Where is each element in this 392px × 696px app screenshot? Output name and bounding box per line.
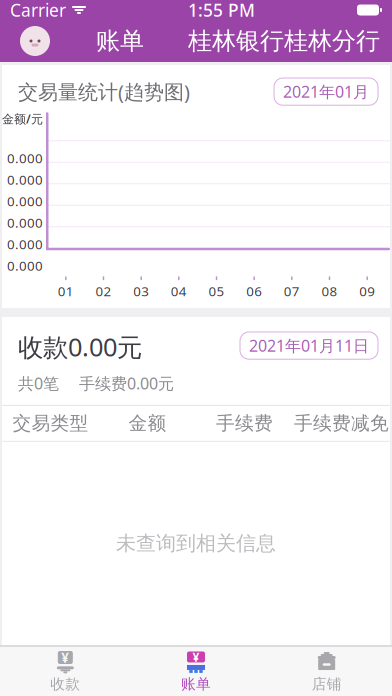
staticText: 04	[171, 282, 187, 300]
staticText: 收款0.00元	[18, 330, 142, 364]
staticText: 手续费减免	[294, 412, 389, 435]
staticText: 0.000	[7, 192, 43, 210]
button[interactable]: ¥	[131, 644, 261, 696]
staticText: 金额/元	[2, 111, 43, 127]
button[interactable]: 店铺	[261, 644, 392, 696]
button[interactable]: ¥	[0, 644, 131, 696]
staticText: Carrier	[10, 0, 66, 21]
staticText: 0.000	[7, 235, 43, 253]
staticText: 店铺	[312, 675, 342, 693]
staticText: 07	[284, 282, 300, 300]
staticText: ¥	[61, 649, 69, 666]
staticText: 2021年01月	[283, 81, 369, 102]
staticText: 06	[246, 282, 262, 300]
staticText: 05	[208, 282, 224, 300]
staticText: 0.000	[7, 171, 43, 188]
staticText: 0.000	[7, 214, 43, 231]
staticText: 01	[58, 282, 74, 300]
staticText: 手续费0.00元	[79, 373, 174, 394]
staticText: 共0笔	[18, 373, 59, 394]
button[interactable]: 2021年01月11日	[240, 332, 378, 359]
staticText: 08	[321, 282, 337, 300]
staticText: 0.000	[7, 149, 43, 167]
staticText: 桂林银行桂林分行	[188, 26, 380, 56]
staticText: 收款	[50, 675, 80, 693]
staticText: 0.000	[7, 257, 43, 274]
staticText: 交易类型	[12, 412, 88, 435]
staticText: 手续费	[216, 412, 273, 435]
staticText: 2021年01月11日	[249, 335, 369, 356]
staticText: ¥	[192, 649, 199, 665]
staticText: 1:55 PM	[188, 0, 255, 21]
staticText: 金额	[128, 412, 166, 435]
staticText: 账单	[181, 675, 211, 693]
staticText: 02	[95, 282, 111, 300]
staticText: 未查询到相关信息	[116, 531, 276, 556]
staticText: 账单	[96, 26, 144, 56]
staticText: 交易量统计(趋势图)	[18, 78, 190, 105]
staticText: 03	[133, 282, 149, 300]
button[interactable]: Profile	[18, 24, 52, 58]
staticText: 09	[359, 282, 375, 300]
button[interactable]: 2021年01月	[274, 78, 378, 105]
